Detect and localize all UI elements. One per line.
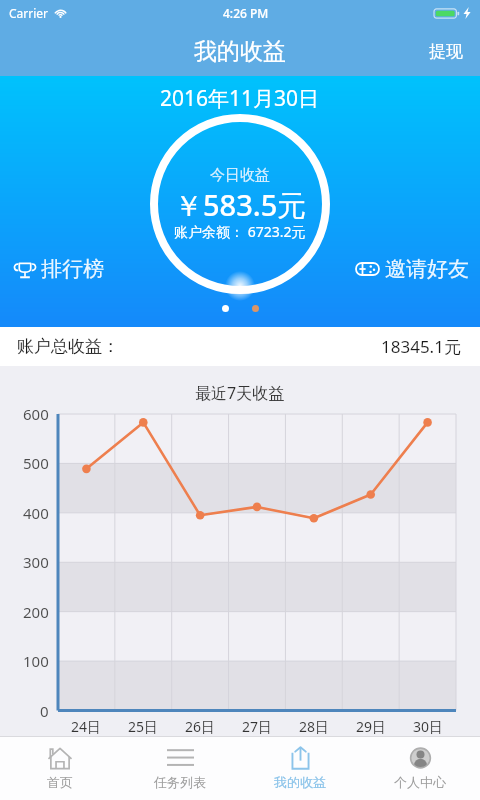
staticText: 任务列表 xyxy=(154,774,206,790)
staticText: 账户总收益： xyxy=(17,336,119,357)
staticText: Carrier xyxy=(9,5,49,21)
staticText: 0 xyxy=(40,701,49,721)
button[interactable]: Task list xyxy=(120,737,240,800)
staticText: 2016年11月30日 xyxy=(160,84,320,113)
staticText: 30日 xyxy=(413,717,444,736)
staticText: 今日收益 xyxy=(210,166,270,185)
button[interactable]: 邀请好友 xyxy=(345,248,479,290)
staticText: 100 xyxy=(23,651,49,671)
staticText: 账户余额： 6723.2元 xyxy=(174,222,306,241)
staticText: 首页 xyxy=(47,774,73,790)
staticText: 200 xyxy=(23,602,49,622)
staticText: 29日 xyxy=(356,717,387,736)
staticText: 最近7天收益 xyxy=(195,382,285,404)
staticText: 4:26 PM xyxy=(223,5,269,21)
button[interactable]: Profile xyxy=(360,737,480,800)
staticText: 500 xyxy=(23,453,49,473)
staticText: 300 xyxy=(23,552,49,572)
staticText: 个人中心 xyxy=(394,774,446,790)
staticText: 26日 xyxy=(185,717,216,736)
staticText: 27日 xyxy=(242,717,273,736)
staticText: 排行榜 xyxy=(41,256,104,282)
button[interactable]: 排行榜 xyxy=(4,248,114,290)
staticText: 我的收益 xyxy=(194,37,286,66)
staticText: 600 xyxy=(23,404,49,424)
staticText: 我的收益 xyxy=(274,774,326,790)
staticText: ￥583.5元 xyxy=(174,185,307,225)
button[interactable]: My earnings xyxy=(240,737,360,800)
staticText: 24日 xyxy=(71,717,102,736)
staticText: 提现 xyxy=(429,41,463,62)
button[interactable]: 提现 xyxy=(412,29,480,74)
button[interactable]: Home xyxy=(0,737,120,800)
staticText: 25日 xyxy=(128,717,159,736)
staticText: 28日 xyxy=(299,717,330,736)
staticText: 18345.1元 xyxy=(381,335,461,358)
staticText: 邀请好友 xyxy=(385,256,469,282)
staticText: 400 xyxy=(23,503,49,523)
